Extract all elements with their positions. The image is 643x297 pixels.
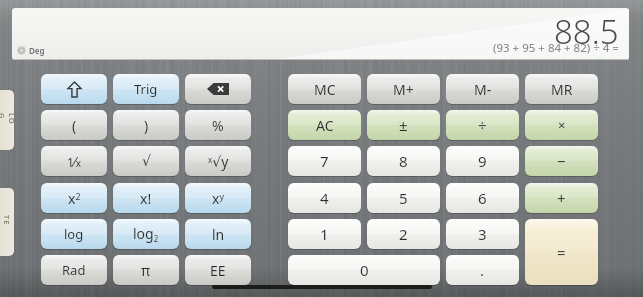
button[interactable]: π bbox=[113, 255, 179, 285]
staticText: . bbox=[480, 260, 485, 280]
staticText: 5 bbox=[399, 188, 408, 208]
button[interactable]: 5 bbox=[367, 183, 440, 213]
staticText: 0 bbox=[360, 260, 369, 280]
staticText: LOG bbox=[0, 113, 14, 127]
button[interactable]: % bbox=[185, 110, 251, 140]
staticText: MC bbox=[314, 80, 336, 99]
staticText: 9 bbox=[478, 151, 487, 171]
button[interactable]: 6 bbox=[446, 183, 519, 213]
staticText: × bbox=[558, 116, 566, 134]
button[interactable]: √ bbox=[113, 146, 179, 176]
staticText: log bbox=[64, 225, 84, 243]
button[interactable]: Trig bbox=[113, 74, 179, 104]
button[interactable]: 3 bbox=[446, 219, 519, 249]
button[interactable]: Shift bbox=[41, 74, 107, 104]
button[interactable]: MR bbox=[525, 74, 598, 104]
staticText: 1 bbox=[320, 224, 329, 244]
staticText: EE bbox=[210, 261, 226, 280]
staticText: M- bbox=[474, 80, 492, 99]
button[interactable]: Backspace bbox=[185, 74, 251, 104]
staticText: Trig bbox=[134, 80, 158, 98]
staticText: AC bbox=[316, 116, 334, 135]
button[interactable]: NOTES bbox=[0, 188, 14, 256]
button[interactable]: ÷ bbox=[446, 110, 519, 140]
staticText: ) bbox=[144, 116, 149, 135]
button[interactable]: . bbox=[446, 255, 519, 285]
button[interactable]: 8 bbox=[367, 146, 440, 176]
staticText: xy bbox=[212, 189, 224, 208]
staticText: + bbox=[557, 188, 566, 208]
staticText: √ bbox=[142, 153, 151, 169]
button[interactable]: 2 bbox=[367, 219, 440, 249]
button[interactable]: ± bbox=[367, 110, 440, 140]
staticText: ÷ bbox=[478, 115, 487, 135]
button[interactable]: + bbox=[525, 183, 598, 213]
button[interactable]: AC bbox=[288, 110, 361, 140]
button[interactable]: log bbox=[41, 219, 107, 249]
button[interactable]: 7 bbox=[288, 146, 361, 176]
staticText: ( bbox=[72, 116, 77, 135]
button[interactable]: 0 bbox=[288, 255, 440, 285]
button[interactable]: = bbox=[525, 219, 598, 285]
button[interactable]: x√y bbox=[185, 146, 251, 176]
staticText: MR bbox=[551, 80, 573, 99]
staticText: log2 bbox=[133, 224, 159, 244]
staticText: Rad bbox=[62, 261, 86, 279]
staticText: 3 bbox=[478, 224, 487, 244]
staticText: (93 + 95 + 84 + 82) ÷ 4 = bbox=[493, 40, 619, 56]
button[interactable]: LOG bbox=[0, 90, 14, 150]
button[interactable]: x2 bbox=[41, 183, 107, 213]
staticText: ln bbox=[212, 225, 225, 244]
staticText: x√y bbox=[208, 152, 229, 171]
button[interactable]: MC bbox=[288, 74, 361, 104]
button[interactable]: 1 bbox=[288, 219, 361, 249]
button[interactable]: ln bbox=[185, 219, 251, 249]
button[interactable]: xy bbox=[185, 183, 251, 213]
staticText: − bbox=[557, 151, 566, 171]
button[interactable]: M- bbox=[446, 74, 519, 104]
button[interactable]: ) bbox=[113, 110, 179, 140]
staticText: x! bbox=[140, 189, 152, 208]
button[interactable]: EE bbox=[185, 255, 251, 285]
button[interactable]: × bbox=[525, 110, 598, 140]
button[interactable]: Rad bbox=[41, 255, 107, 285]
staticText: x2 bbox=[68, 189, 81, 208]
button[interactable]: − bbox=[525, 146, 598, 176]
staticText: 88.5 bbox=[554, 9, 619, 54]
button[interactable]: x! bbox=[113, 183, 179, 213]
button[interactable]: 1⁄x bbox=[41, 146, 107, 176]
staticText: Deg bbox=[29, 45, 45, 56]
other: Backspace bbox=[207, 83, 229, 95]
other: Settings bbox=[17, 46, 26, 55]
button[interactable]: ( bbox=[41, 110, 107, 140]
staticText: = bbox=[557, 242, 566, 262]
staticText: % bbox=[212, 116, 224, 135]
button[interactable]: M+ bbox=[367, 74, 440, 104]
staticText: 4 bbox=[320, 188, 329, 208]
button[interactable]: 9 bbox=[446, 146, 519, 176]
staticText: NOTES bbox=[0, 215, 14, 229]
staticText: 1⁄x bbox=[67, 152, 81, 171]
button[interactable]: 88.5 bbox=[12, 8, 629, 60]
staticText: 7 bbox=[320, 151, 329, 171]
other: Shift bbox=[68, 82, 81, 97]
button[interactable]: log2 bbox=[113, 219, 179, 249]
staticText: 2 bbox=[399, 224, 408, 244]
staticText: π bbox=[141, 261, 151, 280]
button[interactable]: 4 bbox=[288, 183, 361, 213]
staticText: M+ bbox=[393, 80, 414, 99]
staticText: ± bbox=[399, 115, 408, 135]
staticText: 8 bbox=[399, 151, 408, 171]
staticText: 6 bbox=[478, 188, 487, 208]
